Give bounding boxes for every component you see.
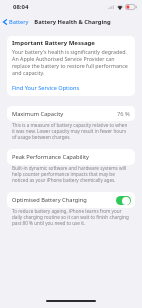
staticText: 08:04	[13, 3, 29, 11]
staticText: This is a measure of battery capacity re…	[12, 122, 131, 140]
button[interactable]: Maximum Capacity	[12, 106, 130, 121]
staticText: Peak Performance Capability	[12, 153, 89, 161]
button[interactable]: Find Your Service Options	[12, 84, 130, 92]
staticText: To reduce battery ageing, iPhone learns …	[12, 208, 131, 226]
staticText: 76 %	[117, 110, 130, 118]
button[interactable]: Battery	[2, 16, 30, 28]
button[interactable]: Peak Performance Capability	[12, 149, 130, 165]
staticText: Battery Health & Charging	[34, 18, 111, 26]
staticText: Battery	[9, 18, 29, 26]
staticText: Optimised Battery Charging	[12, 196, 87, 204]
staticText: Built-in dynamic software and hardware s…	[12, 165, 131, 183]
staticText: Important Battery Message	[12, 39, 95, 47]
staticText: Maximum Capacity	[12, 110, 64, 118]
button[interactable]: Optimised Battery Charging toggle	[116, 196, 131, 205]
staticText: Your battery's health is significantly d…	[12, 48, 130, 76]
staticText: Find Your Service Options	[12, 84, 80, 92]
